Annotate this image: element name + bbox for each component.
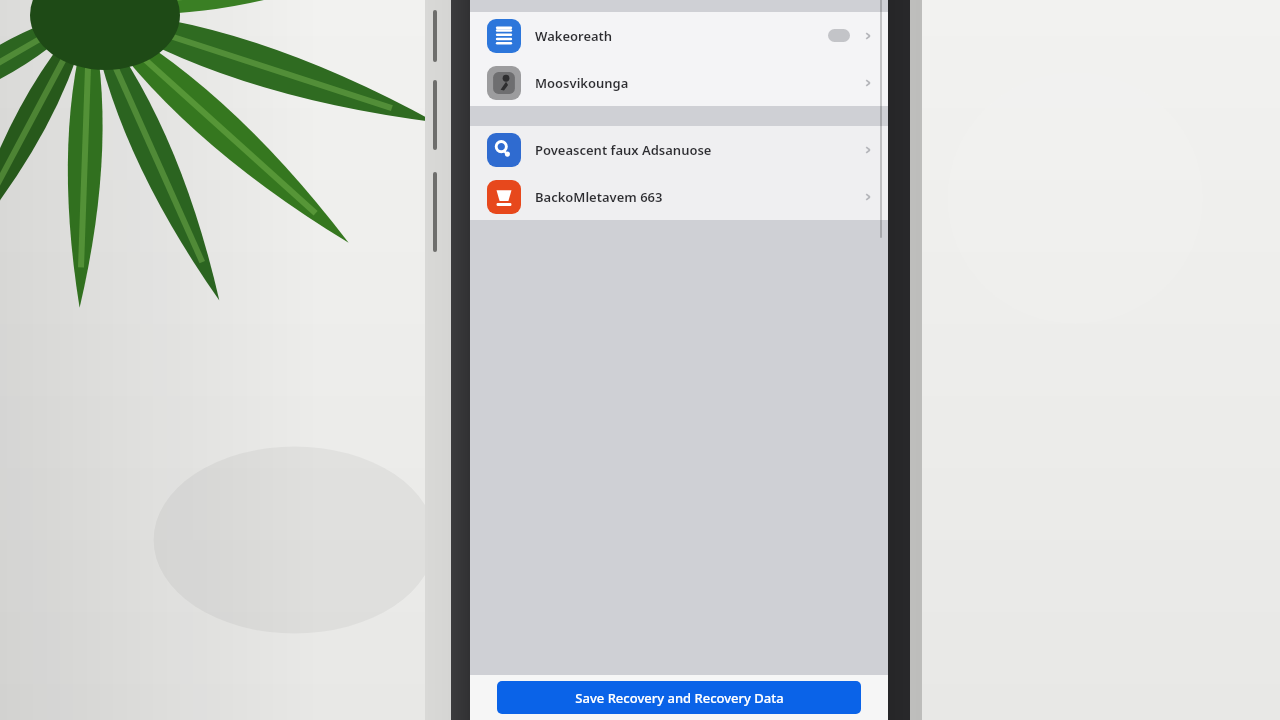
staticText: Save Recovery and Recovery Data [575,689,784,707]
other: Open [862,144,874,156]
button[interactable]: Save Recovery and Recovery Data [497,681,861,714]
button[interactable]: Toggle [828,29,850,42]
button[interactable]: Moosvikounga [470,59,888,106]
button[interactable]: Poveascent faux Adsanuose [470,126,888,173]
staticText: Poveascent faux Adsanuose [535,141,712,159]
button[interactable]: BackoMletavem 663 [470,173,888,220]
button[interactable]: Wakeoreath [470,12,888,59]
other: Open [862,77,874,89]
staticText: Moosvikounga [535,74,629,92]
other: Open [862,30,874,42]
other: Open [862,191,874,203]
staticText: Wakeoreath [535,27,613,45]
staticText: BackoMletavem 663 [535,188,663,206]
